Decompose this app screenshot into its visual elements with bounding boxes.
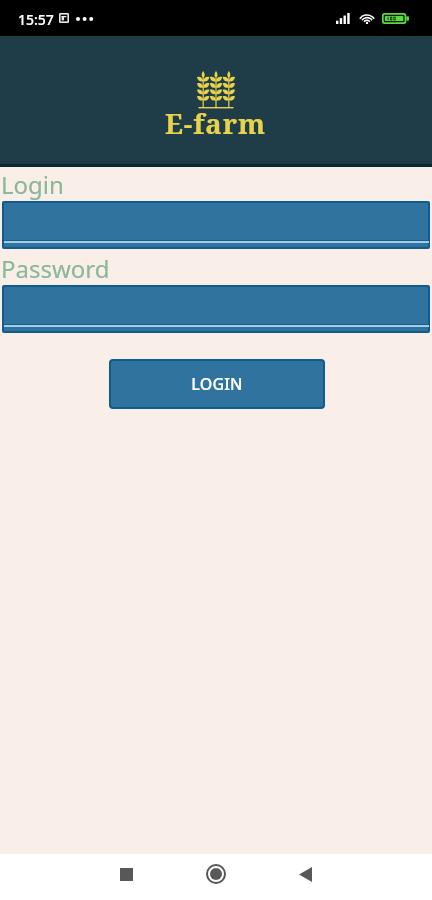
staticText: E-farm — [165, 105, 267, 142]
button[interactable]: Password input field — [2, 285, 430, 333]
button[interactable]: Login input field — [2, 201, 430, 249]
button[interactable]: Recents — [102, 851, 150, 897]
staticText: LOGIN — [191, 373, 243, 395]
staticText: Password — [1, 252, 110, 285]
button[interactable]: Home — [192, 851, 240, 897]
staticText: 15:57 — [18, 10, 54, 29]
button[interactable]: LOGIN — [109, 359, 325, 409]
button[interactable]: Back — [281, 851, 329, 897]
staticText: Login — [1, 168, 64, 201]
